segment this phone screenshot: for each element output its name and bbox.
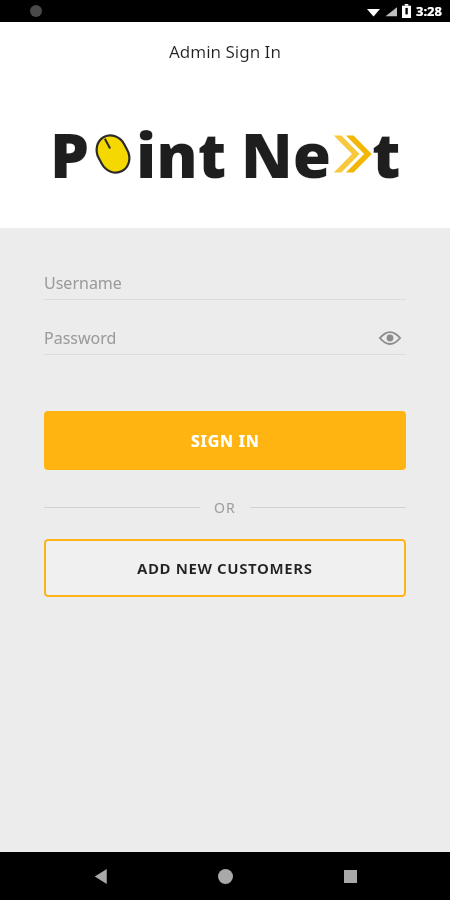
button[interactable]: Back	[77, 852, 125, 900]
staticText: int	[136, 112, 227, 196]
staticText: Admin Sign In	[169, 40, 281, 63]
button[interactable]: Username	[44, 266, 406, 299]
staticText: P	[50, 112, 90, 196]
button[interactable]: Home	[201, 852, 249, 900]
button[interactable]: ADD NEW CUSTOMERS	[44, 539, 406, 597]
staticText: SIGN IN	[191, 430, 260, 452]
button[interactable]: Recent apps	[326, 852, 374, 900]
button[interactable]: Password	[44, 321, 406, 354]
staticText: ADD NEW CUSTOMERS	[137, 558, 313, 578]
staticText: Ne	[241, 112, 332, 196]
staticText: 3:28	[416, 2, 442, 20]
button[interactable]: SIGN IN	[44, 411, 406, 470]
staticText: Username	[44, 272, 122, 294]
button[interactable]: Show password	[374, 322, 406, 354]
staticText: OR	[214, 498, 236, 517]
staticText: t	[372, 112, 401, 196]
staticText: Password	[44, 327, 117, 349]
